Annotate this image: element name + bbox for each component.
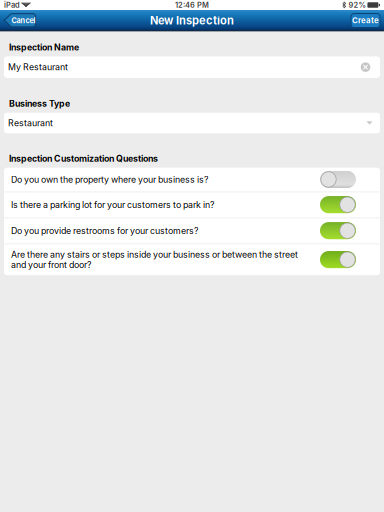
staticText: New Inspection [150, 14, 234, 27]
button[interactable]: Restaurant [0, 113, 384, 133]
staticText: 12:46 PM [175, 1, 209, 9]
staticText: Is there a parking lot for your customer… [11, 199, 214, 210]
button[interactable]: Cancel [3, 13, 37, 28]
button[interactable]: Yes [320, 222, 356, 239]
staticText: My Restaurant [8, 62, 68, 72]
staticText: Inspection Customization Questions [9, 153, 158, 164]
staticText: Restaurant [8, 118, 53, 128]
button[interactable]: No [320, 171, 356, 188]
staticText: Inspection Name [9, 42, 79, 52]
staticText: Do you provide restrooms for your custom… [11, 225, 198, 236]
staticText: Do you own the property where your busin… [11, 174, 208, 185]
staticText: Business Type [9, 98, 70, 109]
button[interactable]: Yes [320, 196, 356, 213]
button[interactable]: Yes [320, 251, 356, 268]
staticText: 92% [348, 1, 365, 9]
staticText: Are there any stairs or steps inside you… [11, 249, 298, 270]
staticText: iPad [4, 1, 20, 9]
staticText: Create [352, 16, 379, 25]
staticText: Cancel [11, 16, 35, 25]
button[interactable]: Create [351, 13, 380, 27]
button[interactable]: Clear text [360, 62, 371, 73]
